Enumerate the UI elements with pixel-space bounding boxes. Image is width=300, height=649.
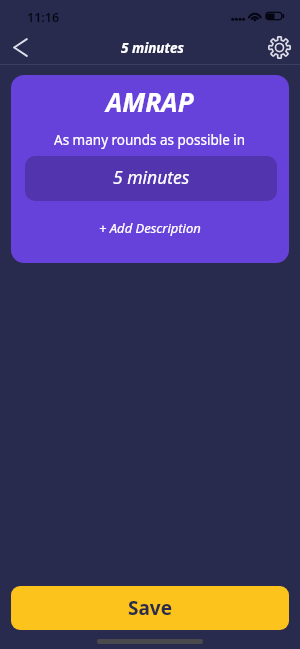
staticText: Save xyxy=(128,595,173,621)
button[interactable]: 5 minutes xyxy=(25,156,277,201)
button[interactable]: + Add Description xyxy=(91,215,209,241)
staticText: 11:16 xyxy=(27,9,60,26)
button[interactable]: Back xyxy=(0,30,40,64)
staticText: + Add Description xyxy=(99,219,201,237)
staticText: AMRAP xyxy=(106,84,194,119)
staticText: 5 minutes xyxy=(121,39,184,57)
button[interactable]: Settings xyxy=(259,30,299,64)
staticText: As many rounds as possible in xyxy=(54,131,246,149)
staticText: 5 minutes xyxy=(113,165,190,189)
button[interactable]: Save xyxy=(11,586,289,630)
